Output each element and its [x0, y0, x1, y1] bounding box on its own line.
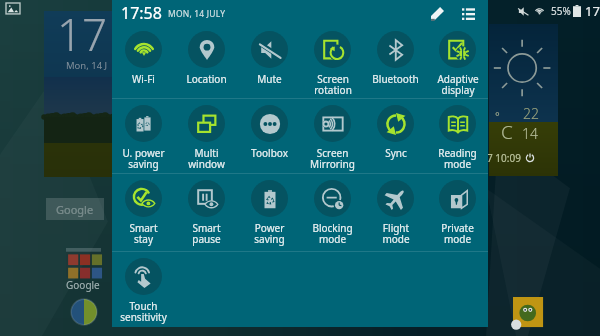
staticText: Mute [257, 72, 282, 86]
button[interactable]: Power saving [238, 174, 301, 251]
button[interactable]: Bluetooth [364, 25, 427, 98]
button[interactable]: Blocking mode [301, 174, 364, 251]
button[interactable]: Flight mode [364, 174, 427, 251]
button[interactable]: Private mode [427, 174, 488, 251]
staticText: Private mode [441, 221, 474, 246]
button[interactable]: Multi window [175, 99, 238, 173]
staticText: 17 [57, 4, 108, 64]
staticText: C [501, 119, 513, 145]
staticText: Google [56, 202, 94, 217]
staticText: Screen rotation [314, 72, 352, 97]
staticText: Sync [385, 146, 407, 160]
staticText: 22 [523, 104, 539, 123]
staticText: Mon, 14 J [66, 59, 108, 72]
button[interactable]: List view [457, 2, 479, 24]
staticText: Smart stay [129, 221, 158, 246]
button[interactable]: Edit [426, 2, 448, 24]
staticText: Blocking mode [312, 221, 353, 246]
staticText: 55% [551, 4, 571, 18]
staticText: Multi window [188, 146, 225, 171]
button[interactable]: Google [46, 198, 104, 220]
button[interactable]: Screen Mirroring [301, 99, 364, 173]
staticText: Wi-Fi [132, 72, 155, 86]
button[interactable]: U. power saving [112, 99, 175, 173]
staticText: 7 10:09 [487, 151, 521, 165]
button[interactable]: Screen rotation [301, 25, 364, 98]
staticText: Google [66, 278, 100, 292]
staticText: Toolbox [251, 146, 288, 160]
staticText: Smart pause [192, 221, 221, 246]
button[interactable]: Wi-Fi [112, 25, 175, 98]
staticText: Touch sensitivity [120, 299, 167, 324]
staticText: Location [186, 72, 227, 86]
button[interactable]: Smart pause [175, 174, 238, 251]
button[interactable]: Sync [364, 99, 427, 173]
staticText: Power saving [254, 221, 285, 246]
staticText: Bluetooth [372, 72, 419, 86]
staticText: ° [495, 108, 500, 123]
button[interactable]: Reading mode [427, 99, 488, 173]
staticText: 14 [522, 124, 538, 143]
staticText: MON, 14 JULY [168, 8, 226, 20]
button[interactable]: Touch sensitivity [112, 252, 175, 327]
button[interactable]: Location [175, 25, 238, 98]
button[interactable]: Mute [238, 25, 301, 98]
staticText: U. power saving [122, 146, 165, 171]
staticText: Flight mode [382, 221, 410, 246]
button[interactable]: Toolbox [238, 99, 301, 173]
staticText: 17:58 [585, 2, 600, 20]
staticText: 17:58 [121, 2, 162, 24]
staticText: Adaptive display [437, 72, 479, 97]
button[interactable]: Google [64, 248, 102, 292]
button[interactable]: Smart stay [112, 174, 175, 251]
staticText: Reading mode [438, 146, 477, 171]
staticText: Screen Mirroring [310, 146, 355, 171]
button[interactable]: Adaptive display [427, 25, 488, 98]
